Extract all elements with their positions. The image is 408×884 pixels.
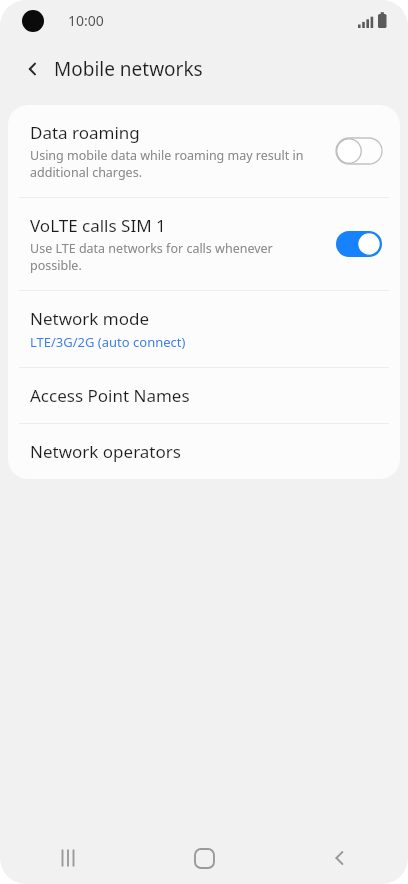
staticText: Network operators bbox=[30, 440, 181, 463]
staticText: 10:00 bbox=[68, 11, 104, 30]
staticText: LTE/3G/2G (auto connect) bbox=[30, 333, 186, 351]
button[interactable]: Network operators bbox=[8, 424, 400, 479]
button[interactable]: Recents bbox=[0, 832, 136, 884]
staticText: Network mode bbox=[30, 307, 150, 330]
staticText: Access Point Names bbox=[30, 384, 190, 407]
staticText: VoLTE calls SIM 1 bbox=[30, 214, 166, 237]
button[interactable]: On bbox=[336, 231, 382, 257]
button[interactable]: Home bbox=[136, 832, 272, 884]
staticText: Using mobile data while roaming may resu… bbox=[30, 147, 304, 181]
staticText: Data roaming bbox=[30, 121, 140, 144]
button[interactable]: Back bbox=[272, 832, 408, 884]
button[interactable]: Access Point Names bbox=[8, 368, 400, 423]
button[interactable]: VoLTE calls SIM 1 bbox=[8, 198, 400, 290]
button[interactable]: Data roaming bbox=[8, 105, 400, 197]
button[interactable]: Off bbox=[336, 138, 382, 164]
staticText: Use LTE data networks for calls whenever… bbox=[30, 240, 273, 274]
button[interactable]: Network mode bbox=[8, 291, 400, 367]
staticText: Mobile networks bbox=[54, 56, 203, 82]
button[interactable]: Back bbox=[12, 48, 54, 90]
